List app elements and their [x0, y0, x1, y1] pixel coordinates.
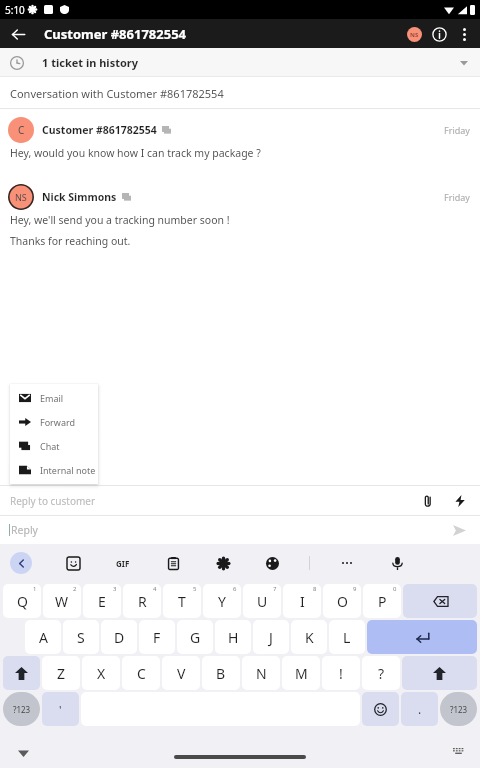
button[interactable]: Forward — [10, 410, 98, 434]
staticText: 3 — [113, 585, 117, 593]
staticText: C — [18, 123, 25, 137]
staticText: 2 — [73, 585, 77, 593]
staticText: Y — [218, 592, 226, 611]
staticText: Friday — [444, 191, 470, 203]
button[interactable]: Assignee — [402, 22, 426, 46]
button[interactable]: H — [215, 620, 251, 654]
button[interactable]: Shift — [3, 656, 40, 690]
button[interactable]: N — [242, 656, 280, 690]
staticText: Forward — [40, 416, 76, 428]
button[interactable]: T — [163, 584, 201, 618]
button[interactable]: More — [334, 550, 360, 576]
button[interactable]: ? — [362, 656, 400, 690]
button[interactable]: Expand toolbar — [10, 552, 32, 574]
button[interactable]: Z — [42, 656, 80, 690]
staticText: U — [257, 592, 268, 611]
staticText: ' — [59, 702, 62, 717]
button[interactable]: Chat — [10, 434, 98, 458]
button[interactable]: Shift — [402, 656, 477, 690]
button[interactable]: D — [101, 620, 137, 654]
staticText: 5:10 — [5, 3, 25, 17]
staticText: Email — [40, 392, 64, 404]
staticText: ?123 — [450, 704, 468, 715]
button[interactable]: More options — [452, 22, 476, 46]
button[interactable]: P — [363, 584, 401, 618]
staticText: R — [138, 592, 147, 611]
button[interactable]: ' — [42, 692, 79, 726]
staticText: ?123 — [13, 704, 31, 715]
button[interactable]: L — [329, 620, 365, 654]
staticText: D — [114, 628, 125, 647]
button[interactable]: Attach file — [418, 491, 438, 511]
staticText: K — [305, 628, 314, 647]
button[interactable]: Back — [6, 22, 30, 46]
staticText: M — [295, 664, 308, 683]
staticText: 1 ticket in history — [42, 55, 139, 70]
button[interactable]: A — [25, 620, 61, 654]
button[interactable]: 1 ticket in history — [0, 48, 480, 77]
button[interactable]: Backspace — [403, 584, 477, 618]
staticText: B — [216, 664, 226, 683]
staticText: Nick Simmons — [42, 190, 117, 204]
staticText: 1 — [33, 585, 37, 593]
button[interactable]: Emoji — [362, 692, 399, 726]
button[interactable]: Email — [10, 386, 98, 410]
button[interactable]: ! — [322, 656, 360, 690]
staticText: C — [137, 664, 146, 683]
button[interactable]: Y — [203, 584, 241, 618]
button[interactable]: U — [243, 584, 281, 618]
staticText: 7 — [273, 585, 277, 593]
button[interactable]: Stickers — [60, 550, 86, 576]
button[interactable]: M — [282, 656, 320, 690]
button[interactable]: Q — [3, 584, 41, 618]
button[interactable]: Info — [426, 21, 452, 47]
button[interactable]: ?123 — [440, 692, 477, 726]
staticText: W — [55, 592, 69, 611]
button[interactable]: Internal note — [10, 458, 98, 482]
staticText: F — [153, 628, 161, 647]
button[interactable]: K — [291, 620, 327, 654]
button[interactable]: C — [122, 656, 160, 690]
staticText: N — [256, 664, 267, 683]
button[interactable]: Clipboard — [160, 550, 186, 576]
staticText: E — [98, 592, 106, 611]
button[interactable]: V — [162, 656, 200, 690]
button[interactable]: Settings — [210, 550, 236, 576]
staticText: 6 — [233, 585, 237, 593]
button[interactable]: Quick actions — [450, 491, 470, 511]
staticText: Q — [17, 592, 28, 611]
staticText: 4 — [153, 585, 157, 593]
button[interactable]: S — [63, 620, 99, 654]
button[interactable]: F — [139, 620, 175, 654]
staticText: Customer #861782554 — [44, 25, 187, 43]
button[interactable]: Themes — [259, 550, 285, 576]
button[interactable]: B — [202, 656, 240, 690]
staticText: ? — [378, 664, 385, 683]
button[interactable]: Voice input — [384, 550, 410, 576]
staticText: Chat — [40, 440, 60, 452]
button[interactable]: E — [83, 584, 121, 618]
button[interactable]: R — [123, 584, 161, 618]
button[interactable]: GIF — [110, 550, 136, 576]
staticText: G — [190, 628, 201, 647]
button[interactable]: Enter — [367, 620, 477, 654]
button[interactable]: ?123 — [3, 692, 40, 726]
button[interactable]: W — [43, 584, 81, 618]
staticText: T — [178, 592, 186, 611]
button[interactable]: . — [401, 692, 438, 726]
button[interactable]: X — [82, 656, 120, 690]
button[interactable]: G — [177, 620, 213, 654]
staticText: X — [97, 664, 106, 683]
button[interactable]: O — [323, 584, 361, 618]
button[interactable]: J — [253, 620, 289, 654]
staticText: Conversation with Customer #861782554 — [10, 86, 224, 101]
button[interactable]: I — [283, 584, 321, 618]
button[interactable]: NS — [8, 184, 470, 210]
button[interactable]: Switch keyboard — [448, 743, 468, 763]
button[interactable]: C — [8, 117, 470, 143]
staticText: J — [269, 628, 273, 647]
staticText: O — [337, 592, 348, 611]
button[interactable]: Send — [448, 519, 470, 541]
button[interactable]: Hide keyboard — [12, 742, 34, 764]
